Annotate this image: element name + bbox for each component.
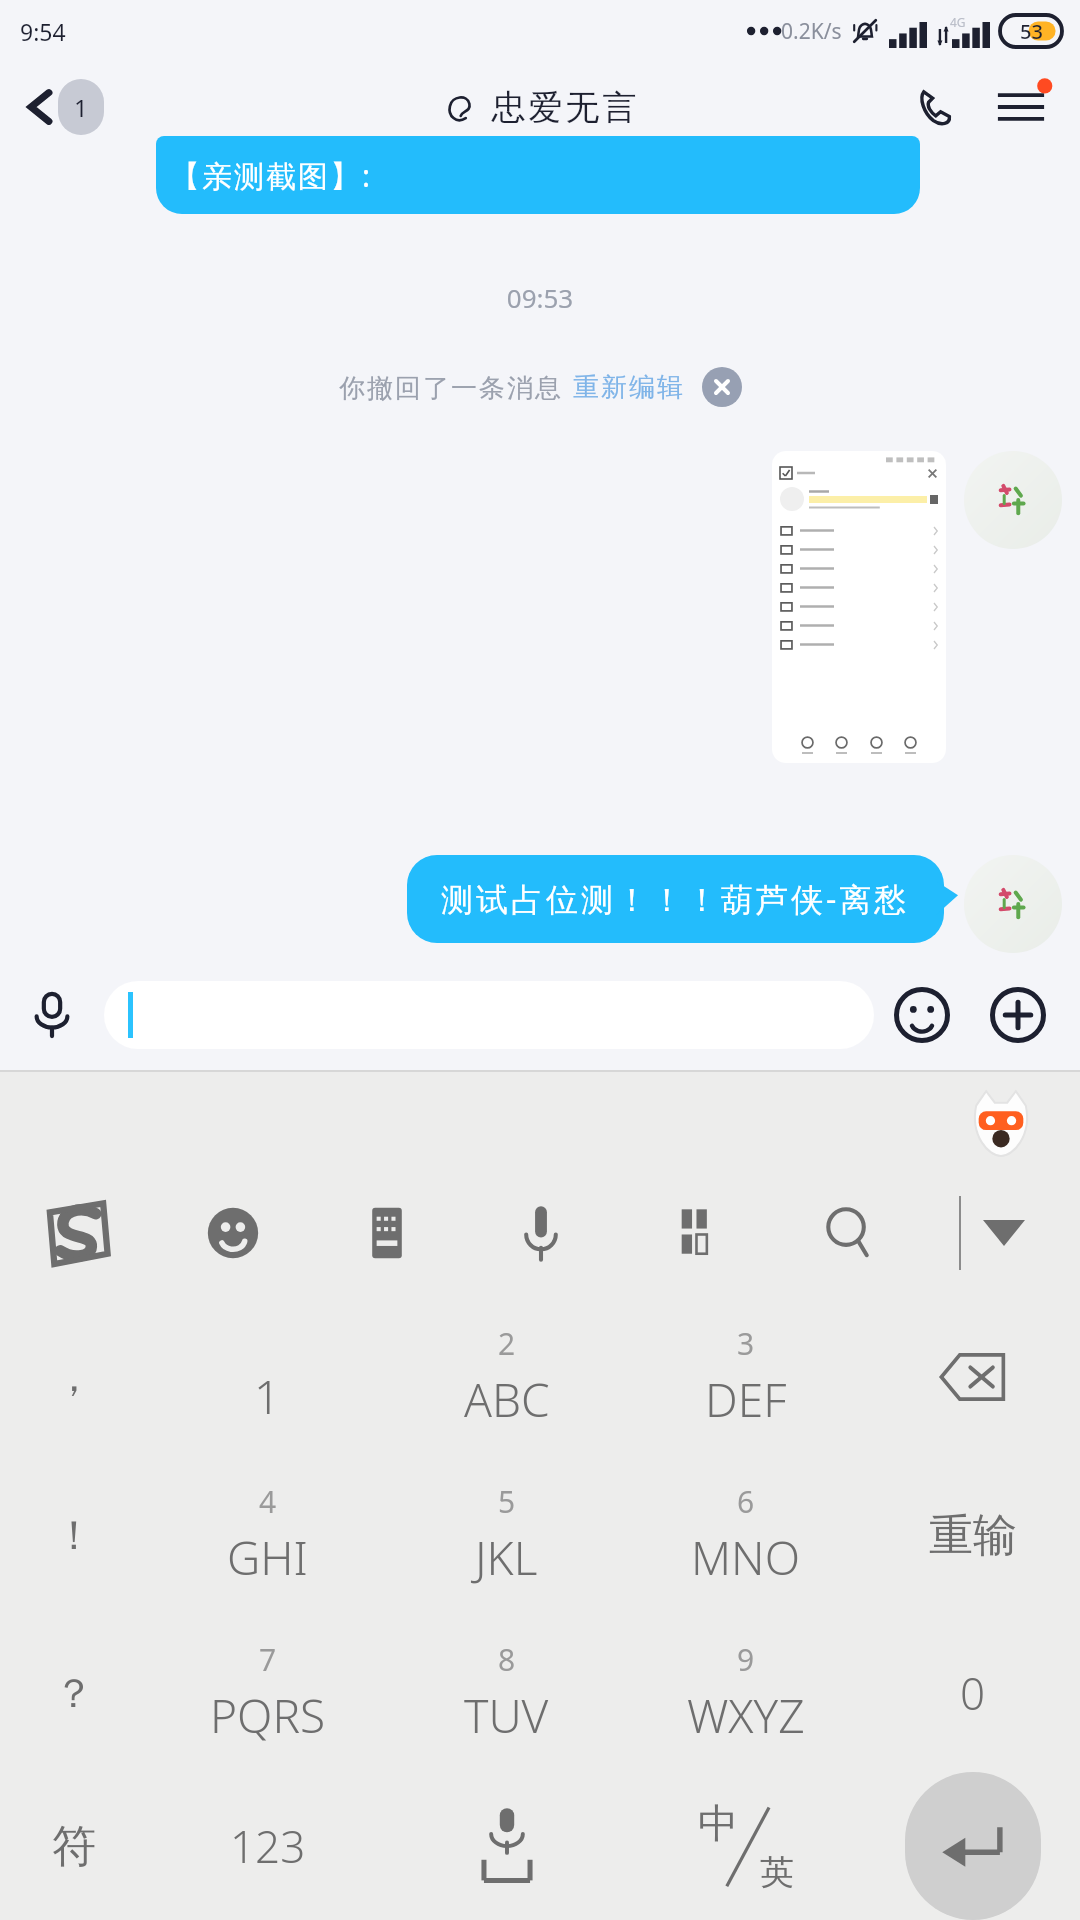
button[interactable]: 7 bbox=[148, 1614, 387, 1772]
button[interactable]: Menu bbox=[988, 74, 1054, 140]
staticText: 1 bbox=[74, 91, 88, 124]
staticText: 09:53 bbox=[0, 280, 1080, 315]
staticText: 1 bbox=[254, 1365, 281, 1428]
button[interactable]: 3 bbox=[626, 1298, 865, 1456]
button[interactable]: 123 bbox=[148, 1772, 387, 1920]
button[interactable]: Avatar bbox=[964, 451, 1062, 549]
button[interactable]: Keyboard layout bbox=[310, 1168, 464, 1298]
staticText: 符 bbox=[52, 1819, 96, 1874]
button[interactable]: 1 bbox=[148, 1298, 387, 1456]
staticText: 123 bbox=[230, 1816, 306, 1876]
staticText: 9 bbox=[737, 1639, 755, 1680]
staticText: 9:54 bbox=[20, 16, 66, 47]
button[interactable]: 5 bbox=[387, 1456, 626, 1614]
button[interactable]: 测试占位测！！！葫芦侠-离愁 bbox=[407, 855, 944, 943]
button[interactable]: Chinese English switch bbox=[626, 1772, 865, 1920]
staticText: GHI bbox=[227, 1526, 308, 1589]
staticText: 0 bbox=[960, 1663, 986, 1723]
button[interactable]: Panels bbox=[618, 1168, 772, 1298]
staticText: 2 bbox=[498, 1323, 516, 1364]
button[interactable]: 【亲测截图】: bbox=[156, 136, 920, 214]
staticText: 忠爱无言 bbox=[490, 86, 638, 129]
staticText: 4 bbox=[259, 1481, 277, 1522]
staticText: 中 bbox=[698, 1798, 738, 1848]
button[interactable]: More bbox=[970, 967, 1066, 1063]
button[interactable]: Backspace bbox=[865, 1298, 1080, 1456]
staticText: WXYZ bbox=[687, 1684, 805, 1747]
staticText: 你撤回了一条消息 bbox=[339, 369, 572, 405]
button[interactable]: Emoji bbox=[155, 1168, 310, 1298]
button[interactable] bbox=[104, 981, 874, 1049]
staticText: DEF bbox=[705, 1368, 787, 1431]
staticText: ABC bbox=[464, 1368, 550, 1431]
button[interactable]: Enter bbox=[905, 1772, 1041, 1920]
staticText: 3 bbox=[737, 1323, 755, 1364]
staticText: TUV bbox=[464, 1684, 549, 1747]
staticText: MNO bbox=[691, 1526, 800, 1589]
button[interactable]: 0 bbox=[865, 1614, 1080, 1772]
staticText: PQRS bbox=[210, 1684, 326, 1747]
button[interactable]: 8 bbox=[387, 1614, 626, 1772]
staticText: 测试占位测！！！葫芦侠-离愁 bbox=[441, 877, 910, 921]
button[interactable]: Voice bbox=[464, 1168, 618, 1298]
button[interactable]: Search bbox=[772, 1168, 926, 1298]
button[interactable]: Avatar bbox=[964, 855, 1062, 953]
button[interactable]: ， bbox=[0, 1298, 148, 1456]
staticText: ！ bbox=[54, 1510, 94, 1560]
button[interactable]: ！ bbox=[0, 1456, 148, 1614]
staticText: 英 bbox=[760, 1851, 794, 1894]
button[interactable]: ？ bbox=[0, 1614, 148, 1772]
staticText: 53 bbox=[1020, 18, 1043, 45]
staticText: 0.2K/s bbox=[781, 17, 842, 46]
button[interactable]: 重输 bbox=[865, 1456, 1080, 1614]
staticText: 4G bbox=[950, 14, 966, 30]
staticText: 7 bbox=[259, 1639, 277, 1680]
staticText: 6 bbox=[737, 1481, 755, 1522]
button[interactable]: Emoji bbox=[874, 967, 970, 1063]
staticText: 重输 bbox=[929, 1508, 1017, 1563]
button[interactable]: Voice input bbox=[0, 963, 104, 1067]
button[interactable]: Screenshot image bbox=[772, 451, 946, 763]
button[interactable]: Assistant bbox=[970, 1084, 1032, 1156]
staticText: ？ bbox=[54, 1668, 94, 1718]
staticText: 5 bbox=[498, 1481, 516, 1522]
button[interactable]: 9 bbox=[626, 1614, 865, 1772]
button[interactable]: 2 bbox=[387, 1298, 626, 1456]
button[interactable]: Call bbox=[904, 76, 966, 138]
staticText: 8 bbox=[498, 1639, 516, 1680]
button[interactable]: Back bbox=[14, 73, 116, 141]
staticText: ， bbox=[54, 1352, 94, 1402]
button[interactable]: Hide keyboard bbox=[961, 1190, 1047, 1276]
button[interactable]: 4 bbox=[148, 1456, 387, 1614]
button[interactable]: Space / voice bbox=[387, 1772, 626, 1920]
button[interactable]: Sogou input bbox=[0, 1168, 155, 1298]
button[interactable]: Dismiss bbox=[702, 367, 742, 407]
staticText: 【亲测截图】: bbox=[170, 155, 920, 196]
staticText: JKL bbox=[475, 1526, 538, 1589]
button[interactable]: 6 bbox=[626, 1456, 865, 1614]
button[interactable]: 符 bbox=[0, 1772, 148, 1920]
button[interactable]: 重新编辑 bbox=[572, 371, 684, 404]
